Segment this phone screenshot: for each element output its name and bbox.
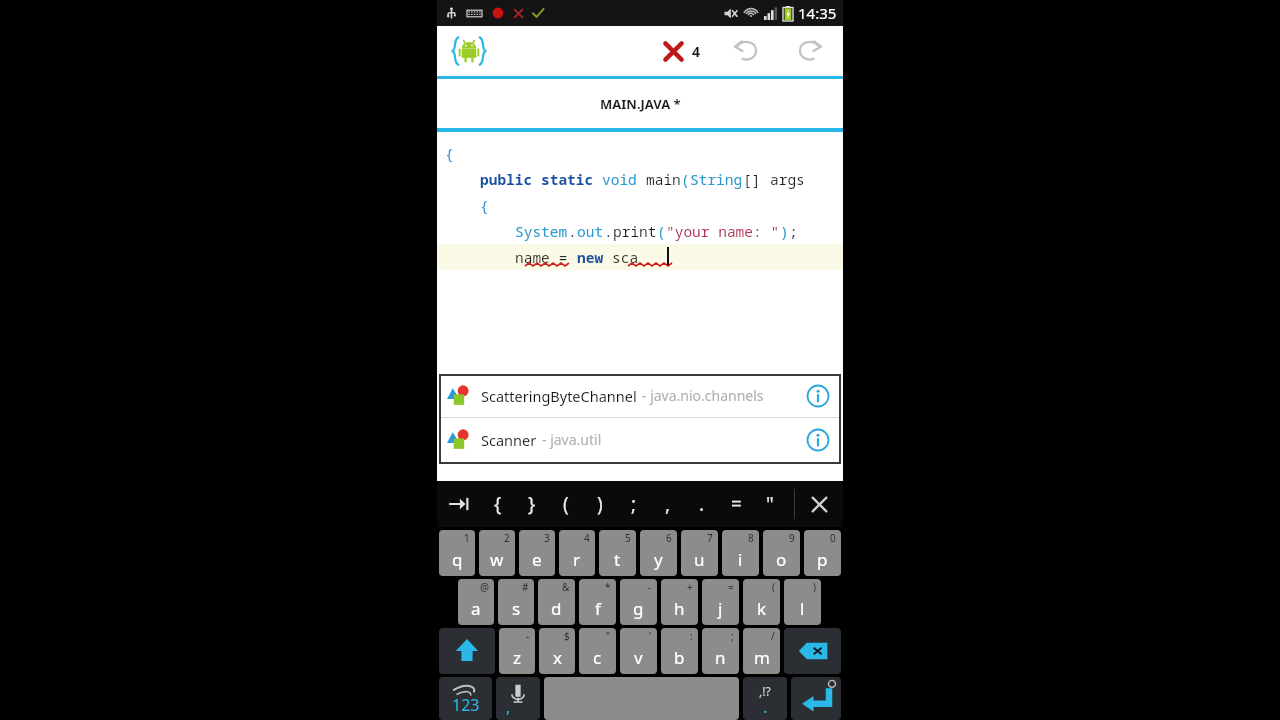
staticText: Scanner: [481, 430, 537, 450]
staticText: String: [690, 169, 743, 189]
button[interactable]: 3: [519, 530, 555, 576]
button[interactable]: /: [743, 628, 780, 674]
button[interactable]: ": [579, 628, 616, 674]
staticText: r: [573, 548, 581, 571]
staticText: @: [480, 580, 489, 594]
staticText: *: [605, 580, 611, 594]
button[interactable]: 4: [559, 530, 595, 576]
button[interactable]: Backspace: [784, 628, 841, 674]
button[interactable]: Scanner: [439, 418, 841, 461]
button[interactable]: 7: [681, 530, 718, 576]
button[interactable]: }: [515, 481, 549, 527]
staticText: 9: [789, 531, 795, 545]
staticText: ,: [665, 491, 671, 517]
button[interactable]: ;: [702, 628, 739, 674]
staticText: f: [595, 597, 601, 620]
staticText: &: [562, 580, 570, 594]
button[interactable]: 6: [640, 530, 677, 576]
staticText: b: [674, 646, 685, 669]
staticText: System: [515, 221, 568, 241]
button[interactable]: 2: [479, 530, 515, 576]
staticText: v: [634, 646, 643, 669]
button[interactable]: (: [743, 579, 780, 625]
button[interactable]: ScatteringByteChannel: [439, 374, 841, 417]
staticText: 8: [748, 531, 754, 545]
button[interactable]: Close symbol bar: [795, 481, 843, 527]
staticText: ": [766, 491, 774, 517]
button[interactable]: (: [549, 481, 583, 527]
staticText: x: [553, 646, 562, 669]
button[interactable]: ,: [651, 481, 685, 527]
button[interactable]: Enter: [791, 677, 841, 720]
staticText: .: [763, 695, 768, 718]
button[interactable]: Shift: [439, 628, 495, 674]
button[interactable]: ": [753, 481, 787, 527]
button[interactable]: -: [620, 579, 657, 625]
button[interactable]: 9: [763, 530, 800, 576]
button[interactable]: ): [583, 481, 617, 527]
button[interactable]: &: [538, 579, 575, 625]
staticText: []: [743, 169, 770, 189]
button[interactable]: 123: [439, 677, 492, 720]
button[interactable]: 0: [804, 530, 841, 576]
button[interactable]: Info about Scanner: [803, 425, 833, 455]
staticText: (: [772, 580, 775, 594]
button[interactable]: #: [498, 579, 534, 625]
button[interactable]: Tab: [437, 481, 481, 527]
staticText: o: [776, 548, 787, 571]
staticText: -: [648, 580, 652, 594]
button[interactable]: Voice input: [496, 677, 540, 720]
staticText: a: [471, 597, 481, 620]
button[interactable]: 8: [722, 530, 759, 576]
staticText: name: [515, 247, 550, 267]
button[interactable]: :: [661, 628, 698, 674]
staticText: $: [564, 629, 570, 643]
staticText: 2: [504, 531, 510, 545]
button[interactable]: *: [579, 579, 616, 625]
staticText: =: [728, 580, 734, 594]
staticText: ,!?: [759, 683, 771, 699]
button[interactable]: +: [661, 579, 698, 625]
button[interactable]: Space: [544, 677, 739, 720]
button[interactable]: $: [539, 628, 575, 674]
staticText: sca: [612, 247, 639, 267]
staticText: c: [593, 646, 602, 669]
staticText: 1: [464, 531, 470, 545]
button[interactable]: ): [784, 579, 821, 625]
staticText: .: [699, 491, 705, 517]
staticText: n: [715, 646, 726, 669]
staticText: l: [800, 597, 805, 620]
button[interactable]: =: [702, 579, 739, 625]
staticText: k: [757, 597, 767, 620]
staticText: 123: [452, 694, 480, 716]
button[interactable]: 1: [439, 530, 475, 576]
staticText: 0: [830, 531, 836, 545]
staticText: q: [452, 548, 463, 571]
button[interactable]: Redo: [789, 31, 829, 71]
button[interactable]: @: [458, 579, 494, 625]
staticText: s: [512, 597, 521, 620]
button[interactable]: Info about ScatteringByteChannel: [803, 381, 833, 411]
button[interactable]: 4: [656, 34, 705, 69]
staticText: ): [813, 580, 816, 594]
button[interactable]: Project menu: [447, 29, 491, 73]
button[interactable]: .: [685, 481, 719, 527]
staticText: ": [606, 629, 611, 643]
button[interactable]: =: [719, 481, 753, 527]
button[interactable]: {: [481, 481, 515, 527]
staticText: ,: [506, 696, 511, 718]
button[interactable]: ': [620, 628, 657, 674]
staticText: t: [614, 548, 621, 571]
button[interactable]: -: [499, 628, 535, 674]
staticText: 4: [692, 42, 701, 61]
button[interactable]: ,!?: [743, 677, 787, 720]
staticText: static: [541, 169, 602, 189]
staticText: u: [694, 548, 705, 571]
button[interactable]: ;: [617, 481, 651, 527]
button[interactable]: Undo: [727, 31, 767, 71]
staticText: - java.nio.channels: [642, 386, 764, 405]
button[interactable]: MAIN.JAVA *: [437, 79, 843, 128]
button[interactable]: 5: [599, 530, 636, 576]
